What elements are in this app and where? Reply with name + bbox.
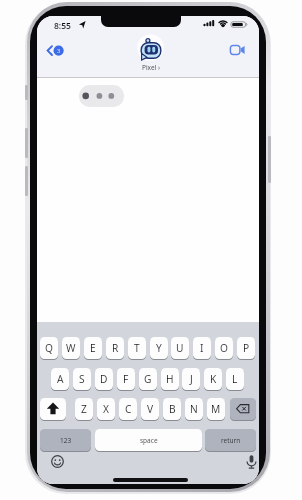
staticText: Pixel ›: [142, 63, 160, 72]
button[interactable]: [230, 398, 256, 420]
staticText: K: [210, 372, 217, 386]
button[interactable]: space: [95, 429, 202, 451]
button[interactable]: D: [95, 368, 113, 390]
button[interactable]: C: [119, 398, 137, 420]
staticText: D: [100, 372, 108, 386]
staticText: T: [134, 341, 140, 355]
button[interactable]: 123: [40, 429, 91, 451]
staticText: C: [125, 402, 132, 416]
button[interactable]: 3: [45, 42, 67, 60]
button[interactable]: K: [204, 368, 222, 390]
staticText: Z: [81, 402, 87, 416]
button[interactable]: return: [205, 429, 256, 451]
button[interactable]: O: [215, 337, 233, 359]
button[interactable]: Y: [150, 337, 168, 359]
staticText: X: [103, 402, 109, 416]
staticText: W: [66, 341, 76, 355]
button[interactable]: T: [128, 337, 146, 359]
button[interactable]: R: [106, 337, 124, 359]
button[interactable]: [137, 34, 164, 61]
staticText: 8:55: [54, 20, 71, 32]
button[interactable]: Q: [40, 337, 58, 359]
staticText: A: [57, 372, 64, 386]
button[interactable]: E: [84, 337, 102, 359]
button[interactable]: F: [117, 368, 135, 390]
staticText: S: [79, 372, 85, 386]
staticText: O: [220, 341, 228, 355]
staticText: H: [166, 372, 174, 386]
button[interactable]: B: [163, 398, 181, 420]
staticText: Q: [45, 341, 53, 355]
button[interactable]: [49, 453, 66, 470]
button[interactable]: Pixel ›: [127, 62, 174, 72]
staticText: E: [90, 341, 96, 355]
button[interactable]: H: [161, 368, 179, 390]
staticText: J: [190, 372, 193, 386]
staticText: P: [243, 341, 250, 355]
staticText: 123: [60, 436, 72, 445]
staticText: 3: [57, 47, 61, 55]
button[interactable]: I: [193, 337, 211, 359]
staticText: I: [200, 341, 204, 355]
button[interactable]: G: [139, 368, 157, 390]
staticText: L: [232, 372, 238, 386]
staticText: N: [190, 402, 198, 416]
staticText: space: [140, 436, 158, 445]
staticText: Y: [156, 341, 162, 355]
button[interactable]: [243, 453, 259, 470]
button[interactable]: X: [97, 398, 115, 420]
button[interactable]: N: [185, 398, 203, 420]
staticText: B: [169, 402, 176, 416]
button[interactable]: [40, 398, 66, 420]
button[interactable]: L: [226, 368, 244, 390]
button[interactable]: P: [237, 337, 255, 359]
button[interactable]: V: [141, 398, 159, 420]
staticText: F: [123, 372, 129, 386]
staticText: V: [147, 402, 154, 416]
button[interactable]: M: [207, 398, 225, 420]
button[interactable]: A: [51, 368, 69, 390]
staticText: G: [144, 372, 152, 386]
button[interactable]: J: [182, 368, 200, 390]
staticText: return: [221, 436, 241, 445]
button[interactable]: [227, 42, 247, 58]
button[interactable]: U: [171, 337, 189, 359]
button[interactable]: Z: [75, 398, 93, 420]
staticText: R: [112, 341, 119, 355]
staticText: U: [176, 341, 184, 355]
staticText: M: [211, 402, 221, 416]
button[interactable]: W: [62, 337, 80, 359]
button[interactable]: S: [73, 368, 91, 390]
